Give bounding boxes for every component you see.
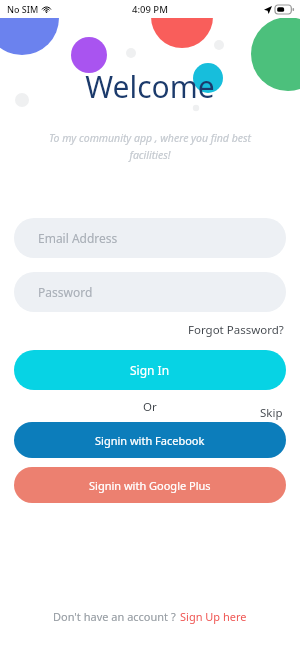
staticText: Signin with Google Plus: [89, 478, 211, 493]
staticText: No SIM: [7, 3, 39, 15]
staticText: To my community app , where you find bes…: [44, 131, 256, 162]
staticText: Skip: [260, 405, 283, 421]
button[interactable]: Sign Up here: [179, 607, 248, 626]
staticText: Don't have an account ?: [53, 609, 179, 624]
button[interactable]: Or: [139, 397, 161, 417]
button[interactable]: Signin with Google Plus: [14, 467, 286, 503]
button[interactable]: Email Address: [14, 218, 286, 258]
staticText: 4:09 PM: [132, 3, 168, 16]
staticText: Or: [143, 399, 157, 415]
staticText: Forgot Password?: [188, 322, 284, 338]
staticText: Welcome: [85, 66, 215, 107]
other: Location: [264, 6, 272, 14]
staticText: Sign Up here: [180, 609, 247, 624]
button[interactable]: Skip: [257, 403, 286, 423]
button[interactable]: Sign In: [14, 350, 286, 390]
staticText: Password: [38, 284, 93, 300]
button[interactable]: Signin with Facebook: [14, 422, 286, 458]
staticText: Signin with Facebook: [95, 433, 205, 448]
other: Wi-Fi: [42, 5, 51, 14]
button[interactable]: Forgot Password?: [186, 319, 286, 341]
staticText: Sign In: [130, 362, 170, 378]
staticText: Email Address: [38, 230, 118, 246]
button[interactable]: Password: [14, 272, 286, 312]
